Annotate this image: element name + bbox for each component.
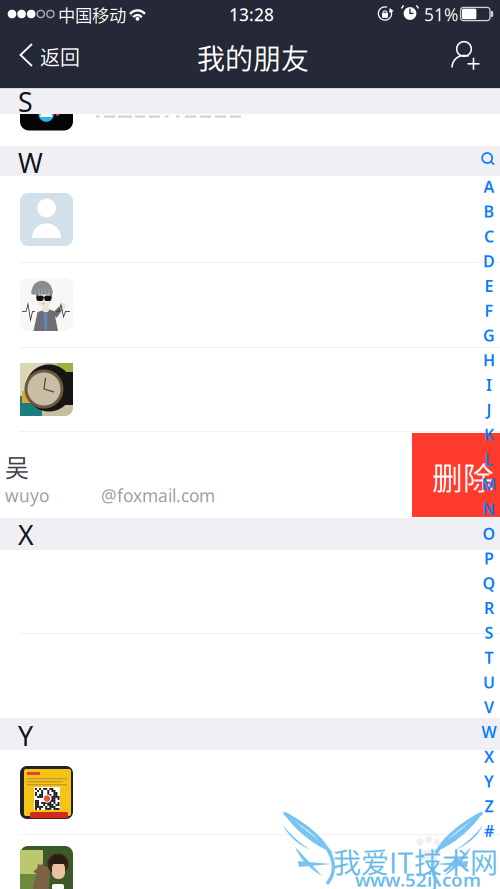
staticText: F	[484, 300, 493, 321]
staticText: V	[484, 696, 494, 718]
staticText: T	[484, 647, 493, 668]
staticText: 中国移动	[58, 2, 126, 27]
staticText: A	[483, 176, 494, 197]
button[interactable]: 删除	[0, 0, 500, 889]
button[interactable]: Section index	[0, 0, 500, 889]
staticText: O	[482, 523, 495, 544]
staticText: L	[484, 449, 493, 470]
staticText: Y	[18, 718, 33, 753]
staticText: S	[18, 84, 33, 119]
staticText: S	[484, 622, 493, 643]
staticText: N	[482, 498, 495, 519]
staticText: 删除	[432, 454, 494, 498]
staticText: @foxmail.com	[101, 484, 215, 507]
staticText: www.52ij.com	[355, 867, 481, 889]
staticText: 51%	[424, 3, 458, 26]
staticText: I	[486, 374, 492, 395]
staticText: Z	[484, 795, 493, 817]
button[interactable]: 吴	[0, 0, 500, 889]
staticText: X	[484, 746, 494, 767]
staticText: D	[483, 250, 495, 271]
staticText: K	[484, 424, 494, 445]
staticText: P	[484, 548, 494, 569]
staticText: 返回	[40, 42, 80, 71]
staticText: wuyo	[5, 484, 49, 507]
staticText: Y	[484, 771, 494, 792]
staticText: C	[484, 226, 494, 247]
staticText: 我的朋友	[197, 37, 309, 77]
staticText: 13:28	[229, 3, 274, 26]
button[interactable]: 返回	[0, 0, 500, 889]
staticText: M	[481, 473, 496, 495]
staticText: J	[486, 399, 491, 420]
staticText: 我爱IT技术网	[333, 841, 498, 881]
staticText: U	[483, 672, 495, 693]
button[interactable]: Add friend	[0, 0, 500, 889]
staticText: R	[484, 597, 494, 618]
staticText: H	[483, 349, 495, 371]
staticText: E	[484, 275, 493, 296]
staticText: 吴	[5, 449, 29, 484]
staticText: X	[18, 517, 34, 552]
staticText: Q	[482, 572, 495, 594]
staticText: W	[481, 721, 496, 742]
staticText: B	[483, 201, 494, 222]
staticText: #	[484, 820, 494, 841]
staticText: W	[18, 145, 43, 180]
staticText: G	[483, 325, 495, 346]
